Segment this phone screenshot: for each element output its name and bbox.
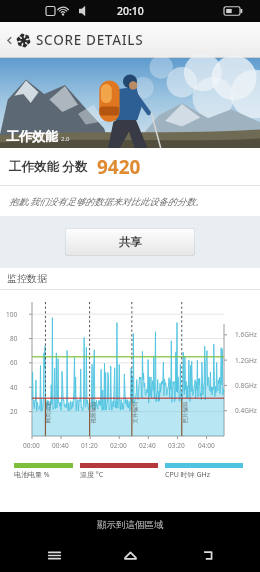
staticText: 1.6GHz xyxy=(235,330,257,339)
staticText: 1.2GHz xyxy=(235,356,257,365)
staticText: 00:40 xyxy=(52,441,69,450)
staticText: 20 xyxy=(10,407,18,416)
staticText: 监控数据 xyxy=(7,272,47,285)
staticText: 网页浏览 xyxy=(44,401,51,423)
button[interactable]: 共享 xyxy=(65,228,195,256)
staticText: 顯示到這個區域 xyxy=(97,519,164,531)
button[interactable]: Back xyxy=(184,540,230,570)
staticText: 100 xyxy=(6,310,18,319)
staticText: 04:00 xyxy=(198,441,215,450)
staticText: 00:00 xyxy=(23,441,40,450)
staticText: SCORE DETAILS xyxy=(36,31,144,49)
button[interactable]: Menu xyxy=(31,540,77,570)
staticText: 60 xyxy=(10,358,18,367)
staticText: 0.8GHz xyxy=(235,381,257,390)
staticText: 80 xyxy=(10,334,18,343)
staticText: 抱歉,我们没有足够的数据来对比此设备的分数。 xyxy=(9,195,205,208)
button[interactable]: Home xyxy=(107,540,153,570)
staticText: 01:20 xyxy=(81,441,98,450)
staticText: 工作效能 xyxy=(6,128,58,144)
staticText: 02:40 xyxy=(139,441,156,450)
staticText: 2.0 xyxy=(61,135,70,143)
staticText: 03:20 xyxy=(168,441,185,450)
staticText: 02:00 xyxy=(110,441,127,450)
staticText: 20:10 xyxy=(117,4,144,18)
staticText: 40 xyxy=(10,383,18,392)
staticText: 0.4GHz xyxy=(235,406,257,415)
staticText: 共享 xyxy=(119,235,142,249)
staticText: 9420 xyxy=(97,154,141,180)
staticText: 电池电量 % xyxy=(14,470,50,480)
staticText: 视频编辑 xyxy=(89,401,96,423)
staticText: 工作效能 分数 xyxy=(9,158,88,175)
staticText: 文件编写 xyxy=(131,401,138,423)
staticText: CPU 时钟 GHz xyxy=(165,470,210,480)
staticText: 温度 °C xyxy=(80,470,104,480)
button[interactable]: Back xyxy=(2,22,16,58)
staticText: 照片编辑 xyxy=(181,401,188,423)
